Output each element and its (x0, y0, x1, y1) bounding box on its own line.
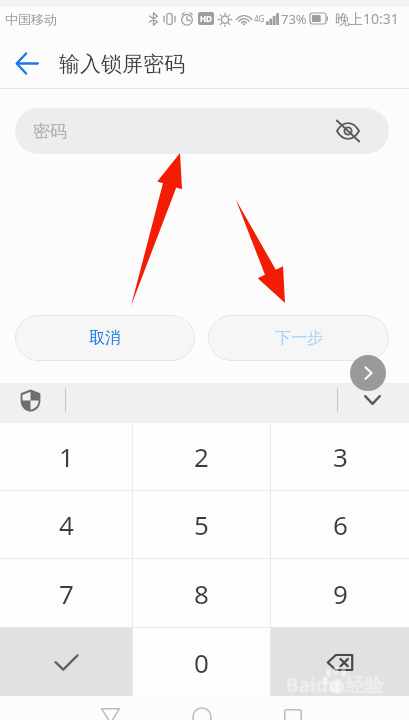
button[interactable]: 9 (271, 559, 409, 627)
button[interactable]: Backspace (271, 628, 409, 696)
button[interactable]: 6 (271, 491, 409, 558)
button[interactable]: 7 (0, 559, 132, 627)
staticText: 0 (194, 645, 209, 680)
staticText: 9 (333, 576, 348, 611)
staticText: 5 (194, 507, 209, 542)
staticText: 4G (254, 13, 265, 24)
staticText: 8 (194, 576, 209, 611)
button[interactable]: Hide keyboard (357, 385, 387, 415)
staticText: 下一步 (275, 328, 323, 348)
staticText: 密码 (33, 121, 67, 142)
button[interactable]: 8 (133, 559, 270, 627)
staticText: 3 (333, 439, 348, 474)
button[interactable]: Back (96, 702, 124, 720)
button[interactable]: Recents (279, 702, 307, 720)
staticText: Baidu 经验 (286, 672, 383, 698)
button[interactable]: 下一步 (208, 315, 389, 361)
button[interactable]: 0 (133, 628, 270, 696)
button[interactable]: 1 (0, 423, 132, 490)
button[interactable]: Expand (350, 355, 386, 391)
staticText: 73% (281, 10, 307, 28)
button[interactable]: Secure input (17, 387, 43, 413)
staticText: 4 (59, 507, 74, 542)
staticText: 7 (59, 576, 74, 611)
staticText: 中国移动 (5, 11, 57, 27)
button[interactable]: 5 (133, 491, 270, 558)
button[interactable]: Show password (333, 116, 363, 146)
staticText: 取消 (89, 328, 121, 348)
button[interactable]: Back (6, 42, 48, 84)
staticText: 1 (59, 439, 74, 474)
staticText: 6 (333, 507, 348, 542)
button[interactable]: 3 (271, 423, 409, 490)
button[interactable]: 密码 (15, 108, 389, 154)
button[interactable]: 2 (133, 423, 270, 490)
staticText: 晚上10:31 (335, 9, 399, 28)
button[interactable]: Home (188, 702, 216, 720)
button[interactable]: Confirm (0, 628, 132, 696)
button[interactable]: 取消 (15, 315, 195, 361)
staticText: 输入锁屏密码 (59, 51, 185, 77)
button[interactable]: 4 (0, 491, 132, 558)
staticText: HD (200, 13, 212, 24)
staticText: 2 (194, 439, 209, 474)
